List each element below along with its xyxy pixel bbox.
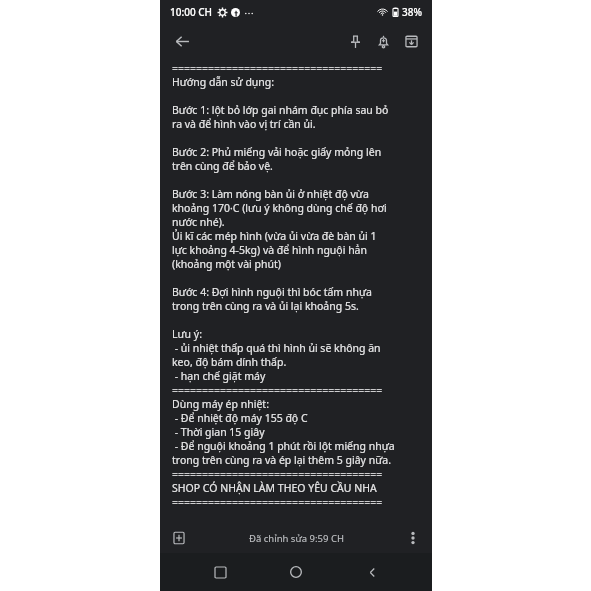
staticText: - Để nguội khoảng 1 phút rồi lột miếng n…: [172, 439, 395, 453]
button[interactable]: Add: [166, 525, 192, 551]
staticText: keo, độ bám dính thấp.: [172, 355, 287, 369]
staticText: - Để nhiệt độ máy 155 độ C: [172, 411, 308, 425]
button[interactable]: Back: [168, 27, 196, 55]
staticText: 10:00 CH: [170, 5, 213, 19]
staticText: trong trên cùng ra và ủi lại khoảng 5s.: [172, 299, 359, 313]
staticText: ===================================: [172, 495, 383, 509]
staticText: SHOP CÓ NHẬN LÀM THEO YÊU CẦU NHA: [172, 481, 377, 495]
button[interactable]: More options: [400, 525, 426, 551]
staticText: ===================================: [172, 467, 383, 481]
button[interactable]: Reminder: [369, 27, 397, 55]
staticText: Hướng dẫn sử dụng:: [172, 75, 275, 89]
staticText: ===================================: [172, 383, 383, 397]
button[interactable]: ===================================: [160, 57, 432, 523]
staticText: Đã chỉnh sửa 9:59 CH: [249, 532, 344, 545]
button[interactable]: Recent apps: [204, 556, 236, 588]
staticText: nước nhé).: [172, 215, 225, 229]
staticText: - ủi nhiệt thấp quá thì hình ủi sẽ không…: [172, 341, 381, 355]
staticText: (khoảng một vài phút): [172, 257, 281, 271]
staticText: Bước 4: Đợi hình nguội thì bóc tấm nhựa: [172, 285, 372, 299]
staticText: Lưu ý:: [172, 327, 202, 341]
button[interactable]: Home: [280, 556, 312, 588]
staticText: khoảng 170·C (lưu ý không dùng chế độ hơ…: [172, 201, 387, 215]
button[interactable]: Back: [356, 556, 388, 588]
staticText: 38%: [402, 5, 422, 19]
staticText: Dùng máy ép nhiệt:: [172, 397, 269, 411]
staticText: - hạn chế giặt máy: [172, 369, 266, 383]
staticText: Ủi kĩ các mép hình (vừa ủi vừa đè bàn ủi…: [172, 229, 377, 243]
staticText: Bước 1: lột bỏ lớp gai nhám đục phía sau…: [172, 103, 389, 117]
staticText: ===================================: [172, 61, 383, 75]
staticText: ra và để hình vào vị trí cần ủi.: [172, 117, 316, 131]
staticText: trong trên cùng ra và ép lại thêm 5 giây…: [172, 453, 391, 467]
staticText: Bước 2: Phủ miếng vải hoặc giấy mỏng lên: [172, 145, 382, 159]
staticText: lực khoảng 4-5kg) và để hình nguội hẳn: [172, 243, 367, 257]
button[interactable]: Pin: [341, 27, 369, 55]
button[interactable]: Archive: [397, 27, 425, 55]
staticText: Bước 3: Làm nóng bàn ủi ở nhiệt độ vừa: [172, 187, 369, 201]
staticText: trên cùng để bảo vệ.: [172, 159, 273, 173]
staticText: - Thời gian 15 giây: [172, 425, 265, 439]
